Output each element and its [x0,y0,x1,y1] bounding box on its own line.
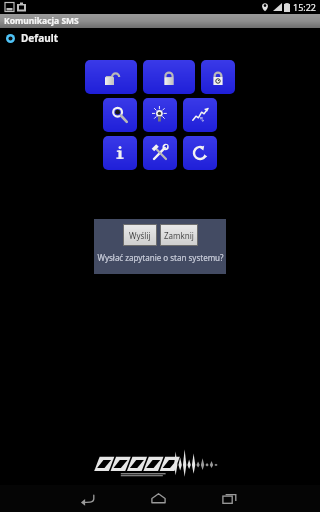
button[interactable]: Wyślij [124,225,156,245]
button[interactable]: Zamknij [161,225,197,245]
button[interactable]: Unlock [85,60,137,94]
staticText: Zamknij [164,230,194,241]
button[interactable]: Home [141,485,175,512]
button[interactable]: Status [103,98,137,132]
button[interactable]: Refresh [183,136,217,170]
button[interactable]: Info [103,136,137,170]
button[interactable]: Outputs [143,98,177,132]
button[interactable]: Back [70,485,104,512]
button[interactable]: Analog inputs [183,98,217,132]
button[interactable]: Lock [143,60,195,94]
button[interactable]: Recent apps [212,485,246,512]
button[interactable]: Default [0,28,320,48]
staticText: 15:22 [293,1,317,13]
staticText: Wysłać zapytanie o stan systemu? [97,252,224,263]
staticText: Default [21,31,58,45]
button[interactable]: Timed lock [201,60,235,94]
button[interactable]: Service [143,136,177,170]
staticText: Wyślij [129,230,151,241]
staticText: Komunikacja SMS [4,15,79,27]
